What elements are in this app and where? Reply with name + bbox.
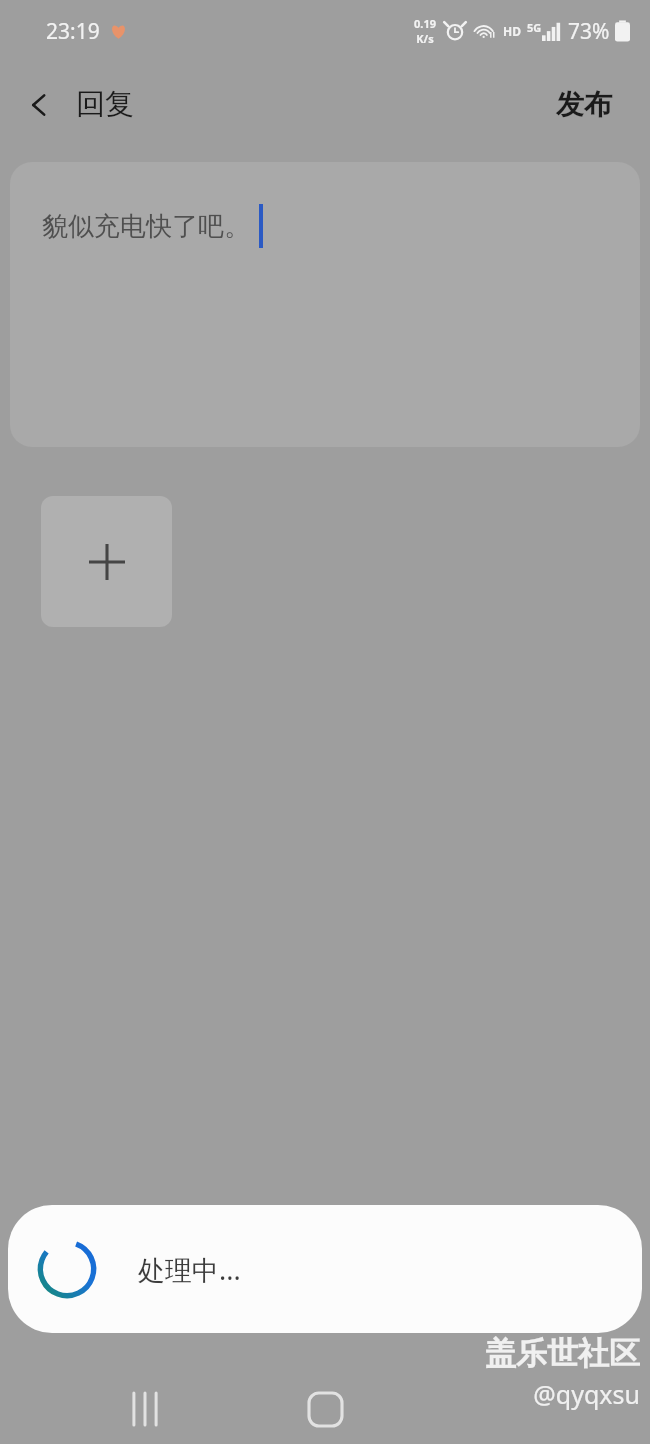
- staticText: 貌似充电快了吧。: [42, 210, 250, 243]
- staticText: 盖乐世社区: [485, 1334, 640, 1373]
- button[interactable]: 发布: [536, 77, 650, 132]
- button[interactable]: 貌似充电快了吧。: [10, 162, 640, 447]
- button[interactable]: Back: [469, 1374, 541, 1444]
- button[interactable]: Add image: [41, 496, 172, 627]
- staticText: @qyqxsu: [533, 1377, 640, 1411]
- staticText: K/s: [416, 31, 434, 46]
- other: Back: [26, 92, 52, 118]
- staticText: 发布: [556, 87, 612, 122]
- staticText: 0.19: [414, 16, 436, 31]
- button[interactable]: 处理中...: [8, 1205, 642, 1333]
- staticText: 23:19: [46, 17, 100, 46]
- button[interactable]: Back: [0, 78, 150, 131]
- staticText: 回复: [76, 86, 134, 123]
- button[interactable]: Home: [289, 1374, 361, 1444]
- staticText: 处理中...: [138, 1251, 241, 1288]
- button[interactable]: Recents: [109, 1374, 181, 1444]
- staticText: 73%: [568, 17, 610, 46]
- staticText: HD: [503, 23, 521, 39]
- staticText: 5G: [527, 20, 542, 35]
